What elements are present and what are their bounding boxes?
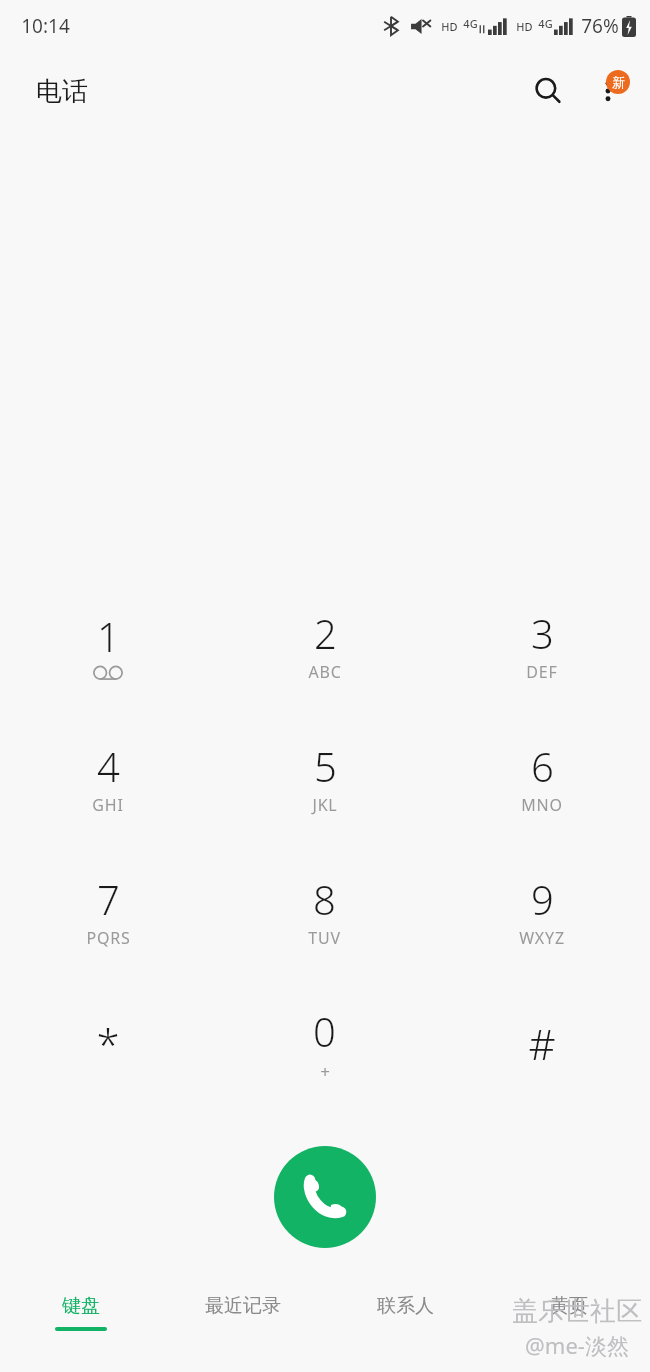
staticText: 0 — [313, 1004, 336, 1058]
staticText: HD — [441, 19, 458, 34]
staticText: 4G — [538, 16, 553, 31]
staticText: MNO — [521, 794, 563, 816]
staticText: 5 — [314, 739, 337, 793]
staticText: 4 — [97, 739, 120, 793]
button[interactable]: 黄页 — [487, 1294, 650, 1350]
staticText: 键盘 — [62, 1294, 100, 1318]
button[interactable]: 0 — [216, 985, 433, 1102]
staticText: 4G — [463, 16, 478, 31]
button[interactable]: Search — [520, 63, 576, 119]
staticText: ABC — [308, 661, 342, 683]
staticText: 联系人 — [377, 1294, 434, 1318]
button[interactable]: 联系人 — [324, 1294, 487, 1350]
staticText: 盖乐世社区 — [512, 1295, 642, 1328]
button[interactable]: More options — [580, 63, 636, 119]
staticText: # — [528, 1015, 556, 1072]
button[interactable]: * — [0, 985, 216, 1102]
button[interactable]: 2 — [216, 586, 433, 703]
staticText: 3 — [531, 606, 554, 660]
staticText: + — [320, 1060, 330, 1083]
staticText: 76% — [581, 13, 619, 39]
button[interactable]: 6 — [433, 719, 650, 836]
staticText: @me-淡然 — [525, 1330, 629, 1360]
button[interactable]: 4 — [0, 719, 216, 836]
button[interactable]: 3 — [433, 586, 650, 703]
button[interactable]: # — [433, 985, 650, 1102]
staticText: 2 — [314, 606, 337, 660]
button[interactable]: 8 — [216, 852, 433, 969]
staticText: 10:14 — [21, 13, 70, 39]
staticText: 6 — [531, 739, 554, 793]
button[interactable]: Call — [274, 1146, 376, 1248]
staticText: 7 — [97, 872, 120, 926]
staticText: 最近记录 — [205, 1294, 281, 1318]
button[interactable]: 最近记录 — [162, 1294, 324, 1350]
staticText: DEF — [526, 661, 558, 683]
staticText: WXYZ — [519, 927, 565, 949]
staticText: * — [96, 1015, 120, 1072]
button[interactable]: 5 — [216, 719, 433, 836]
staticText: 电话 — [36, 75, 88, 108]
staticText: 新 — [612, 74, 625, 90]
staticText: 1 — [97, 609, 120, 663]
button[interactable]: 7 — [0, 852, 216, 969]
staticText: TUV — [308, 927, 341, 949]
staticText: GHI — [92, 794, 124, 816]
staticText: PQRS — [86, 927, 131, 949]
button[interactable]: 1 — [0, 586, 216, 703]
staticText: 黄页 — [550, 1294, 588, 1318]
staticText: JKL — [312, 794, 338, 816]
button[interactable]: 键盘 — [0, 1294, 162, 1350]
button[interactable]: 9 — [433, 852, 650, 969]
staticText: 9 — [531, 872, 554, 926]
staticText: 8 — [313, 872, 336, 926]
staticText: HD — [516, 19, 533, 34]
